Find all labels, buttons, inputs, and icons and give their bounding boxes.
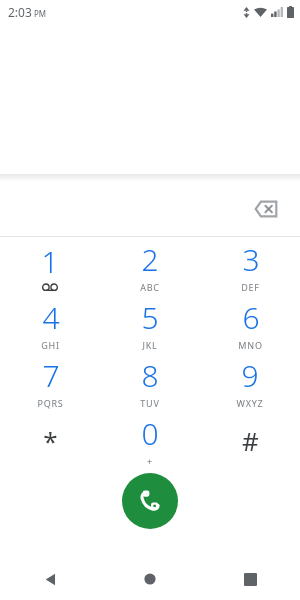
staticText: 5 [141, 297, 159, 338]
staticText: # [242, 423, 259, 458]
button[interactable]: # [200, 411, 300, 469]
staticText: + [147, 455, 153, 467]
button[interactable]: * [0, 411, 100, 469]
button[interactable]: 8 [100, 353, 200, 411]
button[interactable]: 0 [100, 411, 200, 469]
staticText: PQRS [37, 397, 64, 409]
staticText: 4 [42, 297, 60, 338]
staticText: 0 [141, 413, 159, 454]
staticText: 3 [242, 239, 260, 280]
staticText: WXYZ [236, 397, 264, 409]
staticText: * [43, 423, 58, 458]
staticText: PM [34, 8, 47, 19]
button[interactable]: 7 [0, 353, 100, 411]
staticText: 1 [41, 241, 59, 282]
button[interactable]: 1 [0, 237, 100, 295]
button[interactable]: Call [122, 473, 178, 529]
staticText: 9 [241, 355, 259, 396]
button[interactable]: 9 [200, 353, 300, 411]
button[interactable]: 5 [100, 295, 200, 353]
button[interactable]: Back [0, 558, 100, 600]
button[interactable]: Recent apps [200, 558, 300, 600]
staticText: GHI [41, 339, 60, 351]
staticText: 2 [141, 239, 159, 280]
button[interactable]: Home [100, 558, 200, 600]
staticText: MNO [238, 339, 263, 351]
button[interactable]: 6 [200, 295, 300, 353]
button[interactable]: 4 [0, 295, 100, 353]
staticText: ABC [140, 281, 160, 293]
staticText: 7 [42, 355, 60, 396]
staticText: TUV [140, 397, 160, 409]
staticText: JKL [142, 339, 158, 351]
button[interactable]: 2 [100, 237, 200, 295]
staticText: DEF [241, 281, 260, 293]
staticText: 8 [141, 355, 159, 396]
button[interactable]: 3 [200, 237, 300, 295]
staticText: 6 [242, 297, 260, 338]
staticText: 2:03 [8, 4, 32, 20]
button[interactable]: Backspace [246, 189, 286, 229]
